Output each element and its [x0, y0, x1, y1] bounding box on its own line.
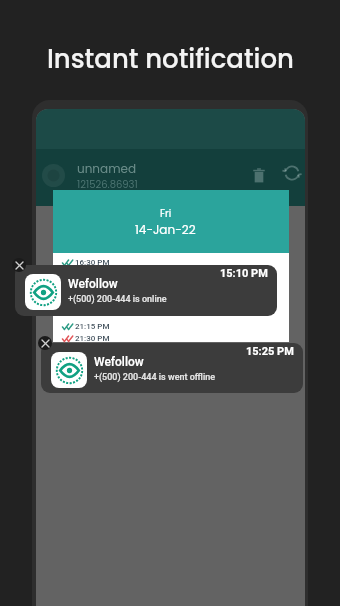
staticText: 21:15 PM — [75, 322, 110, 331]
staticText: 15:25 PM — [246, 345, 294, 358]
staticText: unnamed — [77, 160, 137, 177]
staticText: +(500) 200-444 is online — [68, 294, 167, 305]
button[interactable]: 15:10 PM — [15, 265, 277, 316]
button[interactable]: Refresh — [282, 163, 302, 183]
staticText: +(500) 200-444 is went offline — [94, 372, 216, 383]
staticText: 14-Jan-22 — [135, 221, 196, 238]
button[interactable]: Dismiss notification — [12, 258, 26, 272]
staticText: 15:10 PM — [220, 267, 268, 280]
staticText: 121526.86931 — [77, 177, 138, 191]
staticText: 16:30 PM — [75, 258, 110, 267]
button[interactable]: Dismiss notification — [38, 336, 52, 350]
staticText: Wefollow — [94, 355, 144, 369]
staticText: Wefollow — [68, 277, 118, 291]
staticText: Instant notification — [47, 41, 294, 77]
button[interactable]: Delete — [253, 168, 265, 183]
staticText: Fri — [160, 206, 172, 220]
staticText: 21:30 PM — [75, 334, 110, 343]
button[interactable]: 15:25 PM — [41, 343, 303, 393]
